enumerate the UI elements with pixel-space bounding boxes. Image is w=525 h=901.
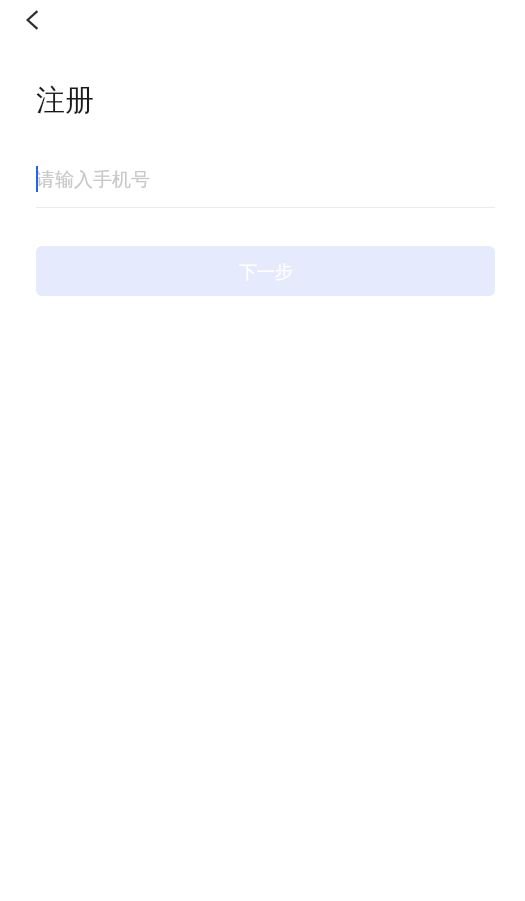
staticText: 注册 [36, 82, 94, 119]
staticText: 下一步 [239, 261, 293, 284]
button[interactable]: 请输入手机号 [36, 162, 495, 208]
staticText: 请输入手机号 [36, 168, 150, 192]
button[interactable]: Back [11, 0, 55, 40]
